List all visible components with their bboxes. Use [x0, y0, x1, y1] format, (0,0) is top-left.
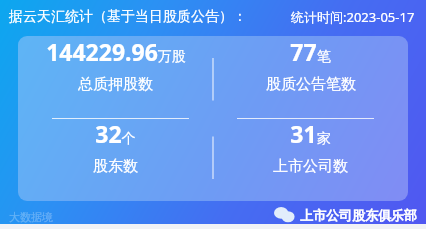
button[interactable]: 77笔 — [213, 36, 408, 94]
staticText: 大数据境 — [9, 210, 53, 224]
staticText: 77笔 — [290, 36, 331, 67]
staticText: 上市公司数 — [273, 157, 348, 176]
staticText: 32个 — [95, 118, 136, 149]
button[interactable]: 144229.96万股 — [18, 36, 213, 94]
other: WeChat official account — [274, 207, 295, 223]
staticText: 股质公告笔数 — [266, 75, 356, 94]
button[interactable]: 32个 — [18, 118, 213, 176]
staticText: 据云天汇统计（基于当日股质公告）： — [9, 8, 247, 26]
staticText: 31家 — [290, 118, 331, 149]
staticText: 统计时间:2023-05-17 — [291, 8, 415, 26]
staticText: 144229.96万股 — [46, 36, 186, 67]
staticText: 总质押股数 — [78, 75, 153, 94]
button[interactable]: 31家 — [213, 118, 408, 176]
button[interactable]: WeChat official account — [274, 207, 417, 223]
staticText: 股东数 — [93, 157, 138, 176]
staticText: 上市公司股东俱乐部 — [300, 207, 417, 223]
